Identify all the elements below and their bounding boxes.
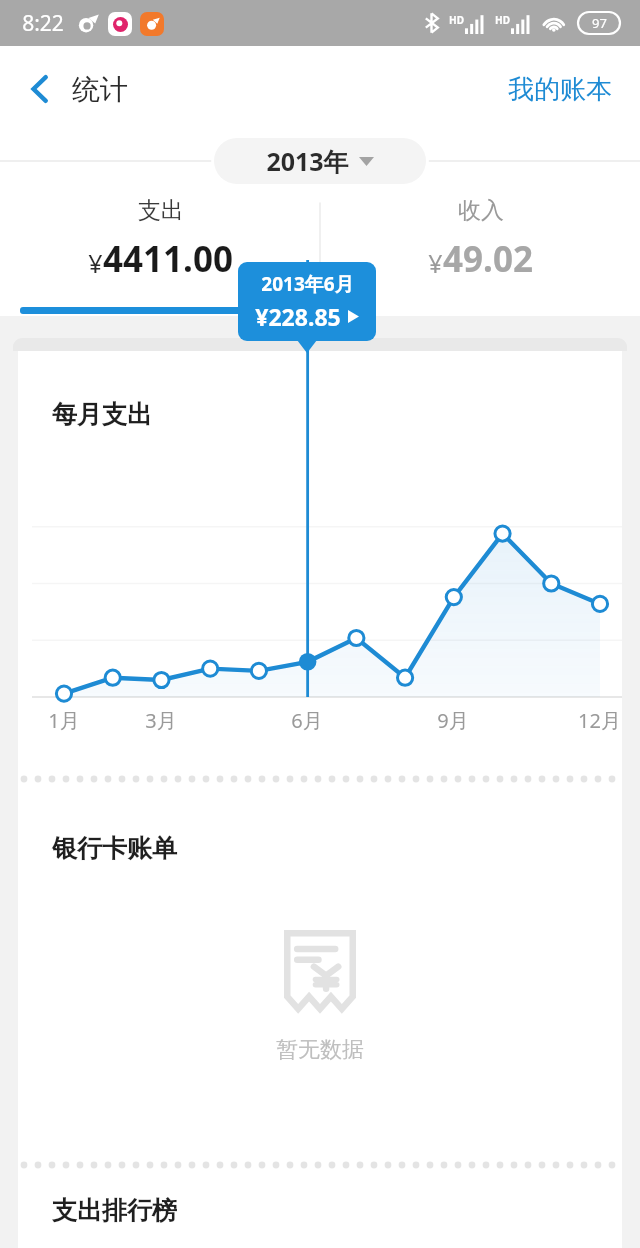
staticText: 1月 <box>48 707 80 734</box>
staticText: HD <box>495 13 510 27</box>
button[interactable]: 支出 <box>0 190 320 316</box>
staticText: 收入 <box>458 196 504 225</box>
staticText: 2013年 <box>266 144 349 178</box>
staticText: 3月 <box>145 707 177 734</box>
staticText: HD <box>449 13 464 27</box>
staticText: 支出 <box>138 196 184 225</box>
button[interactable]: 每月支出 <box>18 351 622 771</box>
button[interactable]: 支出排行榜 <box>18 1173 622 1248</box>
staticText: 97 <box>592 14 607 32</box>
staticText: 我的账本 <box>508 73 612 106</box>
button[interactable]: 我的账本 <box>502 67 618 112</box>
button[interactable]: 统计 <box>72 72 128 107</box>
staticText: 49.02 <box>443 235 533 283</box>
staticText: 2013年6月 <box>261 271 354 297</box>
staticText: 6月 <box>291 707 323 734</box>
button[interactable]: 2013年 <box>214 138 426 184</box>
staticText: 每月支出 <box>52 399 152 430</box>
staticText: 暂无数据 <box>276 1036 364 1064</box>
staticText: 支出排行榜 <box>52 1195 177 1226</box>
staticText: 8:22 <box>22 9 64 38</box>
staticText: 统计 <box>72 72 128 107</box>
button[interactable]: 银行卡账单 <box>18 787 622 1157</box>
staticText: 4411.00 <box>103 235 233 283</box>
button[interactable]: 收入 <box>320 190 640 316</box>
staticText: ¥ <box>88 246 103 280</box>
staticText: ¥228.85 <box>255 301 341 332</box>
button[interactable]: Back <box>12 61 68 117</box>
button[interactable]: 2013年6月 <box>238 262 376 341</box>
staticText: 银行卡账单 <box>52 833 177 864</box>
staticText: 12月 <box>578 707 621 734</box>
staticText: 9月 <box>437 707 469 734</box>
staticText: ¥ <box>428 246 443 280</box>
